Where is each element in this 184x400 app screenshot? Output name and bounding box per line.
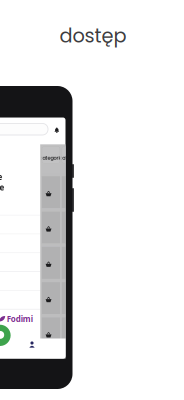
button[interactable]: Powiadomienia bbox=[53, 127, 60, 134]
button[interactable]: Dodaj do koszyka bbox=[42, 244, 60, 279]
button[interactable]: Dodaj do koszyka bbox=[42, 314, 60, 349]
staticText: Polecane dla Ciebie bbox=[0, 171, 4, 193]
button[interactable]: Dodaj do koszyka bbox=[62, 208, 80, 244]
button[interactable]: Dodaj do koszyka bbox=[62, 173, 80, 208]
button[interactable]: Dodaj do koszyka bbox=[42, 173, 60, 208]
button[interactable]: Czat WhatsApp bbox=[0, 325, 11, 346]
button[interactable]: Dodaj do koszyka bbox=[62, 244, 80, 279]
button[interactable]: Dodaj do koszyka bbox=[62, 314, 80, 349]
button[interactable]: Dodaj do koszyka bbox=[42, 279, 60, 314]
button[interactable]: Dodaj do koszyka bbox=[62, 279, 80, 314]
staticText: kategorie bbox=[39, 154, 62, 161]
button[interactable]: Kategorie bbox=[42, 146, 60, 163]
staticText: dostęp bbox=[60, 22, 127, 49]
button[interactable]: Kategorie bbox=[62, 146, 80, 163]
button[interactable]: Konto bbox=[29, 341, 35, 348]
staticText: Fodimi bbox=[7, 314, 33, 324]
button[interactable] bbox=[0, 123, 48, 135]
staticText: kategorie bbox=[59, 154, 82, 161]
button[interactable]: Dodaj do koszyka bbox=[42, 208, 60, 244]
